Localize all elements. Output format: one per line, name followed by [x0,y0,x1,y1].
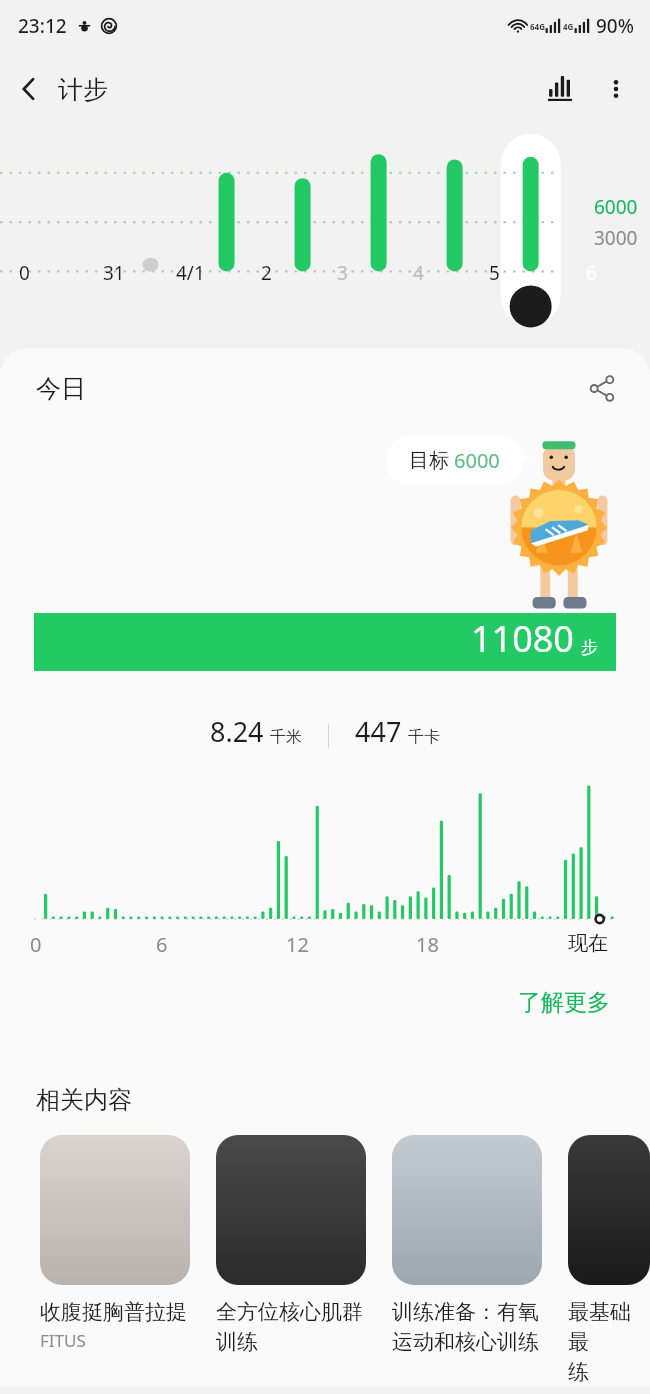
staticText: 8.24 [210,713,264,750]
staticText: 18 [416,931,439,958]
staticText: 4G [563,21,574,32]
button[interactable]: 了解更多 [510,980,618,1025]
button[interactable]: Chart [532,61,588,117]
staticText: 11080 [471,614,574,663]
staticText: 4/1 [176,260,205,286]
button[interactable]: Share [578,364,626,412]
staticText: 31 [103,260,125,286]
staticText: 相关内容 [36,1085,132,1115]
staticText: 6 [586,260,597,286]
staticText: 23:12 [18,13,67,39]
staticText: 目标 [409,448,449,473]
button[interactable]: 全方位核心肌群 训练 [216,1135,366,1356]
staticText: 0 [19,260,30,286]
staticText: 5 [489,260,500,286]
staticText: 了解更多 [518,988,610,1017]
staticText: 今日 [36,373,86,404]
staticText: 0 [30,931,42,958]
staticText: 6000 [454,447,500,474]
staticText: 千卡 [408,727,440,747]
staticText: 训练准备：有氧 运动和核心训练 [392,1299,539,1356]
button[interactable]: Back [0,60,58,118]
button[interactable]: 447 [355,713,440,750]
staticText: 最基础最 练 [568,1299,650,1386]
staticText: 12 [286,931,309,958]
staticText: 千米 [270,727,302,747]
staticText: 447 [355,713,402,750]
staticText: 64G [530,21,545,32]
button[interactable]: 8.24 [210,713,302,750]
staticText: 2 [261,260,272,286]
staticText: 90% [596,13,634,39]
button[interactable]: 收腹挺胸普拉提 [40,1135,190,1352]
staticText: 6 [156,931,168,958]
staticText: 6000 [594,194,638,220]
button[interactable]: 11080 [34,613,616,671]
staticText: 全方位核心肌群 训练 [216,1299,363,1356]
button[interactable]: More options [588,61,644,117]
staticText: 3000 [594,225,638,251]
staticText: 现在 [568,931,608,956]
staticText: 计步 [58,74,108,105]
button[interactable]: 最基础最 练 [568,1135,650,1386]
button[interactable]: 训练准备：有氧 运动和核心训练 [392,1135,542,1356]
staticText: 步 [581,637,598,658]
staticText: FITUS [40,1329,86,1352]
staticText: 3 [337,260,348,286]
staticText: 4 [413,260,424,286]
staticText: 收腹挺胸普拉提 [40,1299,187,1325]
